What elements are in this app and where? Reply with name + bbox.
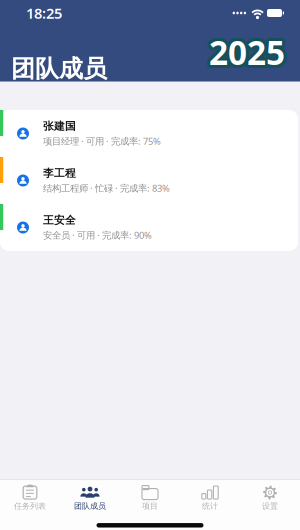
button[interactable]: 设置: [240, 485, 300, 515]
staticText: 2025: [212, 30, 288, 74]
staticText: 2025: [211, 27, 287, 71]
staticText: 团队成员: [74, 501, 106, 511]
staticText: 2025: [207, 33, 283, 77]
staticText: 2025: [207, 32, 283, 76]
button[interactable]: 张建国: [0, 110, 298, 157]
staticText: 统计: [202, 501, 218, 511]
staticText: 张建国: [43, 120, 76, 133]
staticText: 2025: [209, 33, 285, 77]
staticText: 2025: [212, 32, 288, 76]
staticText: 2025: [206, 28, 282, 73]
staticText: 任务列表: [14, 501, 46, 511]
staticText: 2025: [209, 27, 285, 71]
staticText: 2025: [211, 28, 287, 72]
staticText: 2025: [211, 32, 287, 76]
staticText: 2025: [207, 28, 283, 72]
staticText: 李工程: [43, 167, 76, 180]
staticText: 2025: [206, 32, 282, 76]
staticText: 18:25: [26, 3, 62, 23]
button[interactable]: 李工程: [0, 157, 298, 204]
staticText: 2025: [209, 30, 285, 74]
staticText: 2025: [212, 28, 288, 73]
staticText: 项目经理 · 可用 · 完成率: 75%: [43, 135, 161, 147]
staticText: 结构工程师 · 忙碌 · 完成率: 83%: [43, 182, 170, 194]
button[interactable]: 统计: [180, 485, 240, 515]
staticText: 2025: [206, 30, 282, 74]
staticText: 设置: [262, 501, 278, 511]
staticText: 安全员 · 可用 · 完成率: 90%: [43, 229, 152, 241]
staticText: 2025: [211, 33, 287, 77]
staticText: 项目: [142, 501, 158, 511]
button[interactable]: 项目: [120, 485, 180, 515]
staticText: 王安全: [43, 214, 76, 227]
button[interactable]: 任务列表: [0, 485, 60, 515]
staticText: 2025: [207, 27, 283, 71]
button[interactable]: 团队成员: [60, 485, 120, 515]
staticText: 团队成员: [11, 54, 107, 83]
button[interactable]: 王安全: [0, 204, 298, 251]
